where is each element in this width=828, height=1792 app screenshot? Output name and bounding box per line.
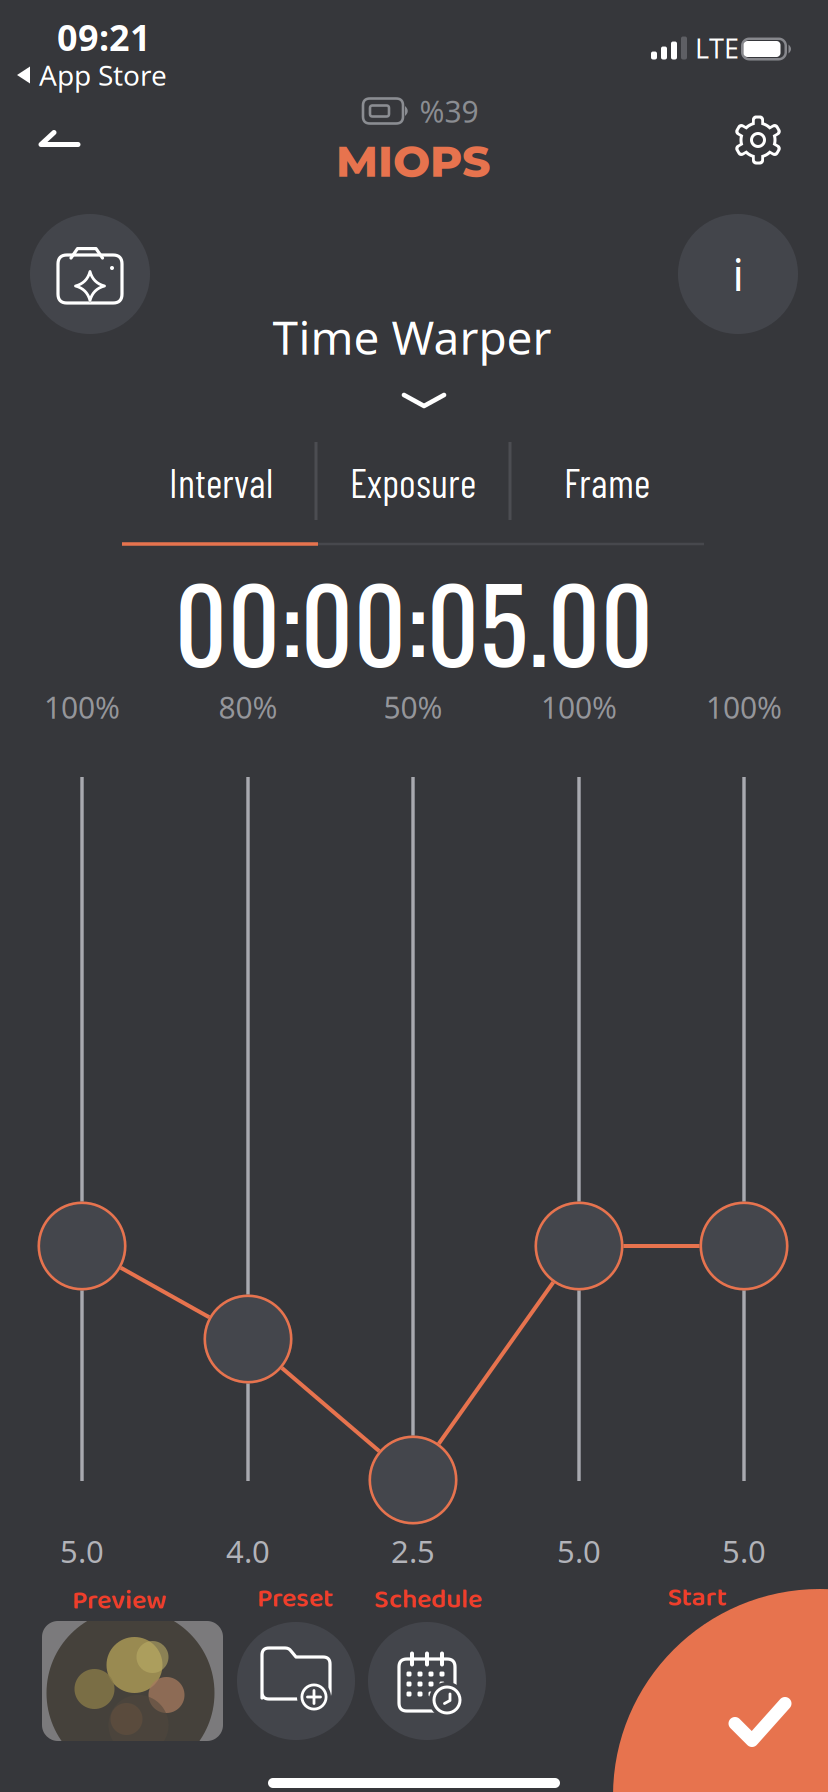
staticText: %39 — [419, 91, 478, 131]
staticText: Schedule — [374, 1578, 482, 1622]
button[interactable]: Slider 2 — [203, 1294, 292, 1383]
staticText: App Store — [39, 56, 167, 94]
staticText: 50% — [383, 687, 442, 727]
staticText: Interval — [169, 458, 273, 506]
staticText: LTE — [695, 30, 739, 66]
staticText: 4.0 — [226, 1530, 270, 1572]
button[interactable]: Back — [41, 132, 79, 145]
staticText: 09:21 — [57, 12, 151, 61]
button[interactable]: Slider 4 — [534, 1201, 623, 1290]
button[interactable]: Slider 5 — [699, 1201, 788, 1290]
button[interactable]: Interval — [131, 442, 311, 522]
button[interactable]: App Store — [17, 56, 167, 94]
staticText: 00:00:05.00 — [174, 545, 653, 697]
button[interactable]: Preset — [237, 1622, 355, 1740]
staticText: 100% — [541, 687, 617, 727]
button[interactable]: Info — [678, 214, 798, 334]
staticText: 100% — [706, 687, 782, 727]
button[interactable]: Preview — [42, 1621, 223, 1741]
button[interactable]: Schedule — [368, 1622, 486, 1740]
staticText: 5.0 — [722, 1530, 766, 1572]
staticText: Time Warper — [272, 306, 551, 368]
staticText: Preview — [72, 1579, 166, 1623]
staticText: MIOPS — [336, 134, 490, 188]
button[interactable]: Slider 3 — [368, 1435, 457, 1524]
staticText: Preset — [257, 1577, 333, 1621]
staticText: Start — [667, 1576, 726, 1620]
staticText: Frame — [564, 458, 650, 506]
staticText: 100% — [44, 687, 120, 727]
button[interactable]: Start — [613, 1589, 828, 1792]
button[interactable]: Collapse — [404, 395, 444, 407]
button[interactable]: Frame — [517, 442, 697, 522]
staticText: Exposure — [350, 458, 476, 506]
staticText: 2.5 — [391, 1530, 435, 1572]
staticText: i — [732, 244, 743, 304]
button[interactable]: Slider 1 — [37, 1201, 126, 1290]
button[interactable]: Exposure — [323, 442, 503, 522]
button[interactable]: Camera preview — [30, 214, 150, 334]
staticText: 5.0 — [60, 1530, 104, 1572]
button[interactable]: Settings — [732, 114, 784, 166]
staticText: 5.0 — [557, 1530, 601, 1572]
staticText: 80% — [218, 687, 277, 727]
